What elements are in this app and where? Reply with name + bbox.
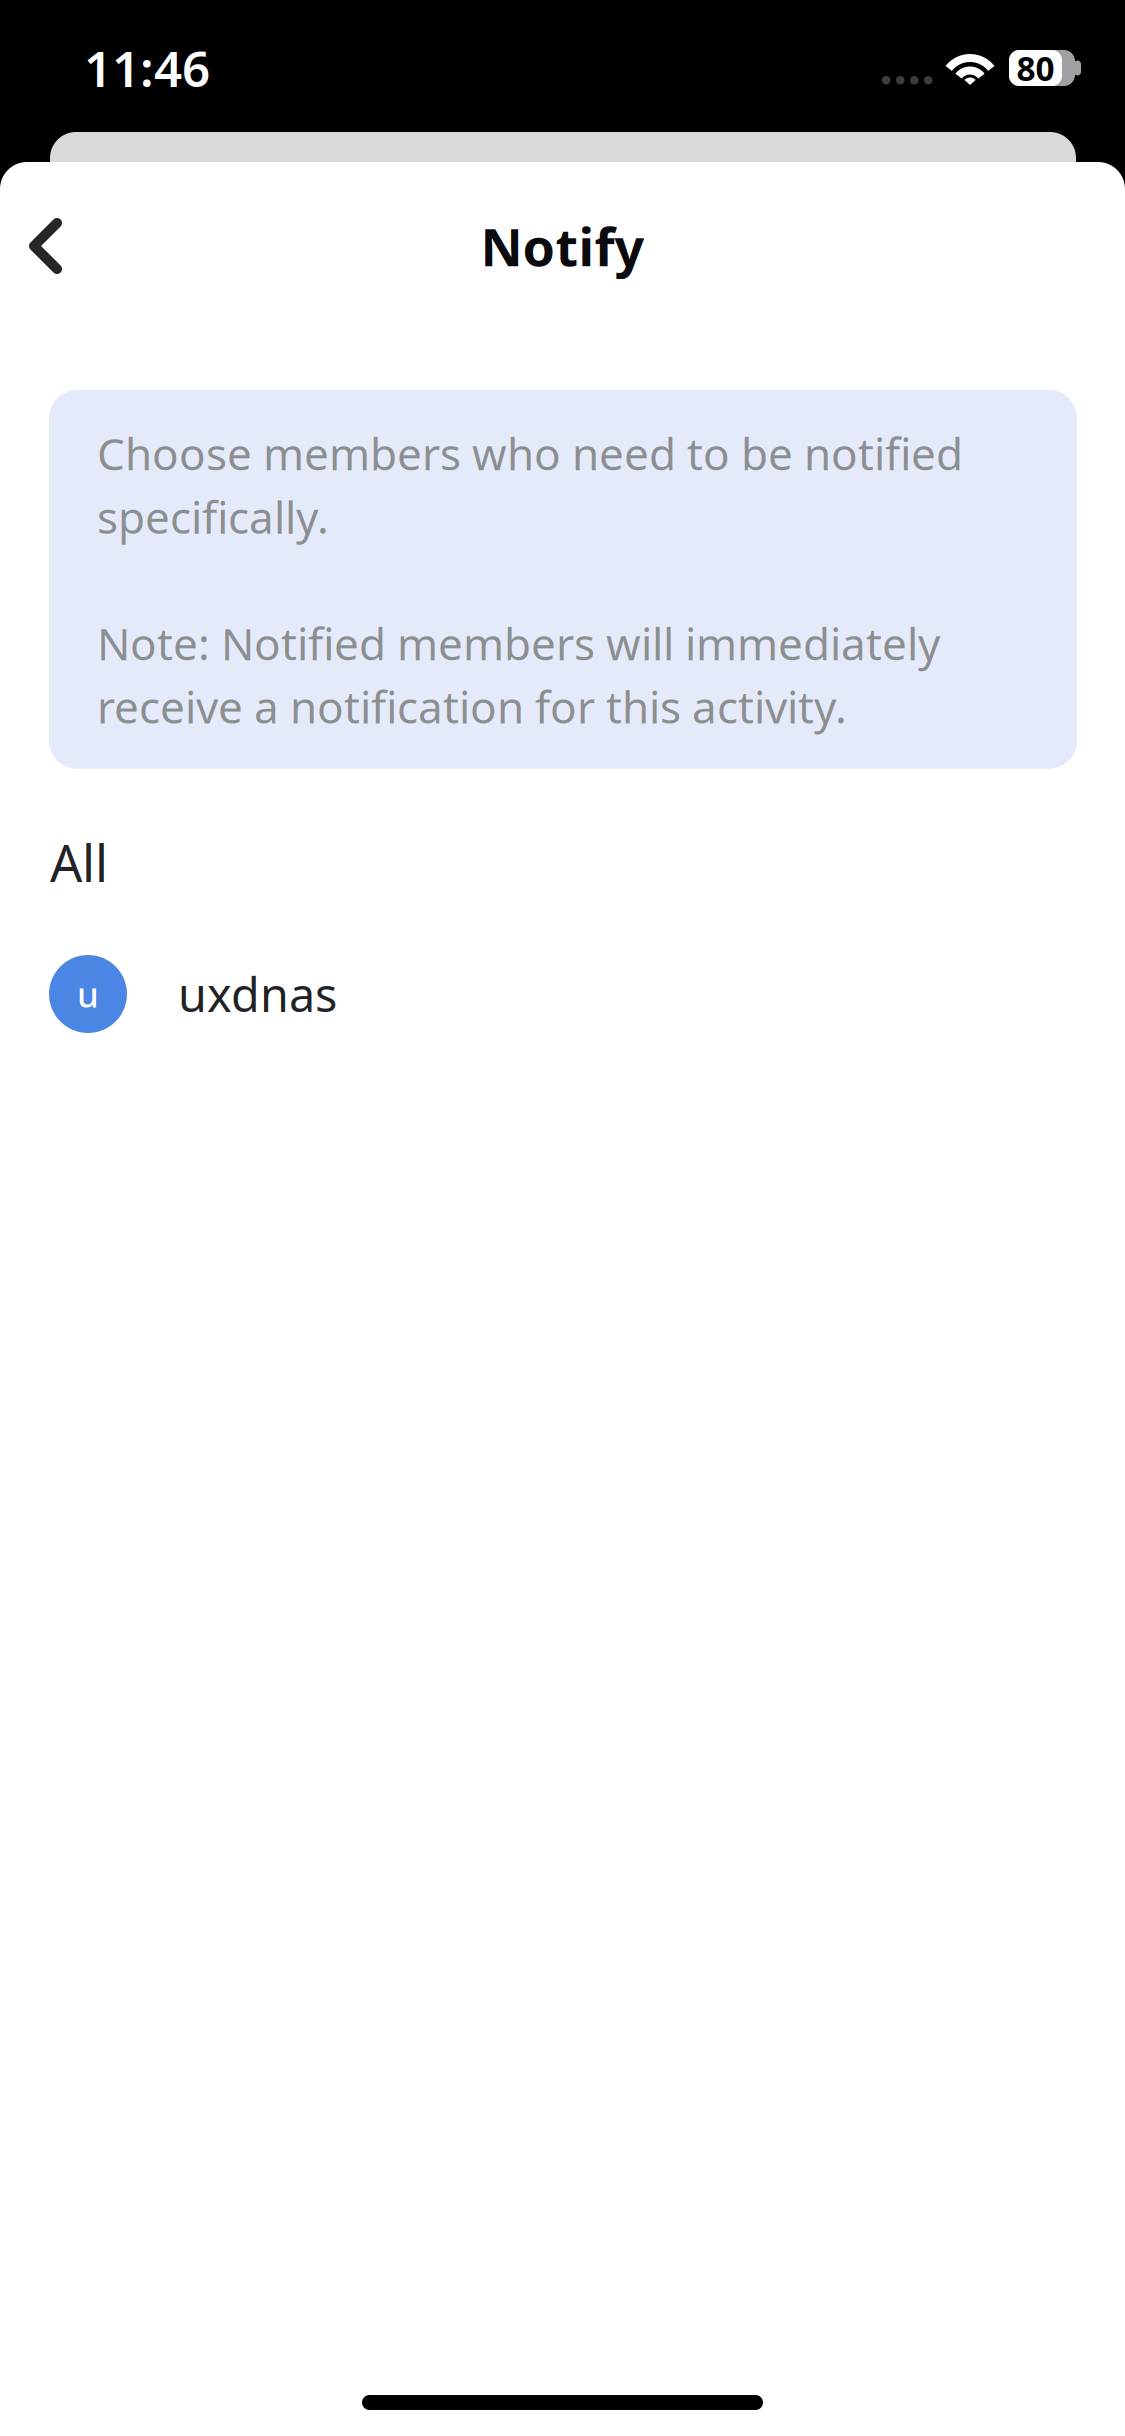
staticText: Note: Notified members will immediately … xyxy=(97,614,940,736)
staticText: 11:46 xyxy=(84,35,210,100)
button[interactable]: Back xyxy=(0,162,91,330)
staticText: 80 xyxy=(1016,46,1054,90)
staticText: Choose members who need to be notified s… xyxy=(97,424,963,546)
staticText: All xyxy=(50,829,108,896)
staticText: uxdnas xyxy=(178,963,337,1025)
button[interactable]: u xyxy=(0,944,1125,1044)
staticText: u xyxy=(77,971,99,1017)
staticText: Notify xyxy=(480,211,644,281)
